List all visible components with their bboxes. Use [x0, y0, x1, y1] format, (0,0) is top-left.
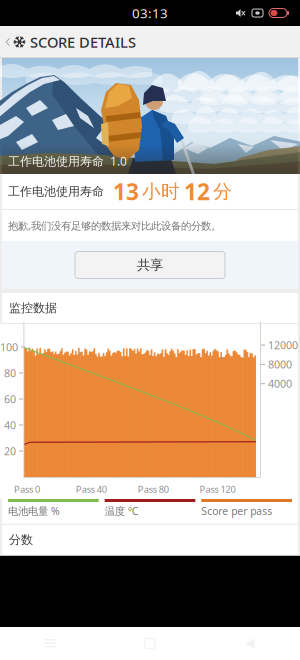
staticText: 12: [184, 176, 210, 206]
staticText: 13: [113, 176, 139, 206]
staticText: Pass 120: [200, 483, 236, 495]
staticText: 工作电池使用寿命: [8, 184, 104, 199]
staticText: 监控数据: [9, 301, 57, 315]
staticText: SCORE DETAILS: [30, 32, 136, 52]
staticText: 60: [4, 392, 16, 406]
staticText: 100: [0, 340, 18, 354]
button[interactable]: Back: [0, 26, 30, 58]
button[interactable]: 共享: [75, 251, 225, 278]
staticText: Pass 80: [138, 483, 169, 495]
staticText: 4000: [268, 377, 292, 391]
staticText: 工作电池使用寿命 1.0: [8, 153, 127, 169]
staticText: 抱歉,我们没有足够的数据来对比此设备的分数。: [8, 219, 221, 232]
staticText: 共享: [137, 257, 163, 273]
staticText: 80: [4, 366, 16, 380]
staticText: Pass 40: [76, 483, 107, 495]
staticText: 8000: [268, 357, 292, 371]
staticText: 分: [213, 180, 232, 203]
staticText: 20: [4, 444, 16, 458]
staticText: 40: [4, 418, 16, 432]
staticText: 分数: [9, 532, 33, 547]
staticText: 小时: [142, 180, 180, 203]
staticText: Pass 0: [14, 483, 40, 495]
staticText: 温度 °C: [105, 504, 139, 518]
staticText: 03:13: [132, 4, 168, 22]
staticText: Score per pass: [201, 504, 272, 518]
staticText: 电池电量 %: [8, 504, 60, 518]
staticText: 12000: [268, 338, 298, 352]
